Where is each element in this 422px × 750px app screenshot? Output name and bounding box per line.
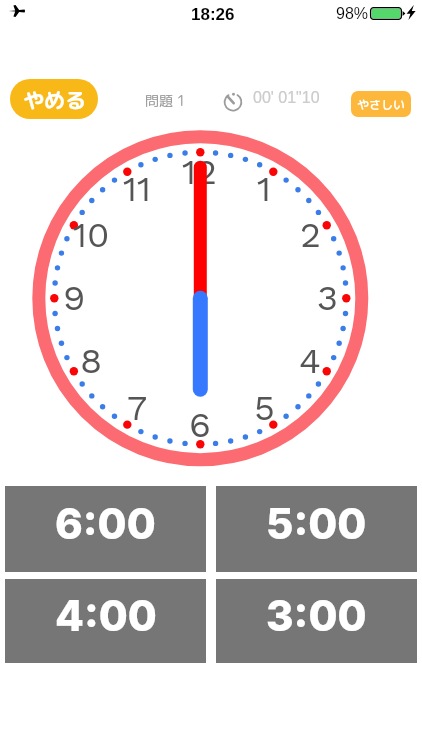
other: Battery 98 percent charging bbox=[370, 7, 406, 20]
staticText: 4 bbox=[299, 340, 321, 382]
staticText: 5:00 bbox=[266, 498, 367, 549]
staticText: 7 bbox=[127, 387, 148, 429]
staticText: 問題 1 bbox=[145, 91, 186, 111]
button[interactable]: 5:00 bbox=[216, 486, 417, 572]
other: Airplane mode bbox=[8, 4, 26, 18]
button[interactable]: やさしい bbox=[351, 91, 411, 117]
button[interactable]: 4:00 bbox=[5, 579, 206, 663]
staticText: 5 bbox=[254, 387, 275, 429]
staticText: 6:00 bbox=[55, 498, 156, 549]
staticText: 18:26 bbox=[191, 5, 235, 24]
staticText: 11 bbox=[123, 168, 152, 210]
staticText: 8 bbox=[80, 340, 103, 382]
staticText: 12 bbox=[182, 151, 218, 193]
button[interactable]: 3:00 bbox=[216, 579, 417, 663]
staticText: やさしい bbox=[357, 96, 406, 113]
button[interactable]: 6:00 bbox=[5, 486, 206, 572]
staticText: 3:00 bbox=[266, 590, 367, 641]
button[interactable]: やめる bbox=[10, 79, 98, 119]
staticText: 00' 01"10 bbox=[253, 89, 320, 107]
staticText: 9 bbox=[63, 277, 86, 319]
staticText: 1 bbox=[257, 168, 272, 210]
other: Timer bbox=[222, 89, 244, 111]
staticText: 6 bbox=[189, 404, 211, 446]
staticText: やめる bbox=[23, 85, 86, 114]
staticText: 98% bbox=[336, 5, 369, 23]
staticText: 3 bbox=[317, 277, 338, 319]
staticText: 10 bbox=[73, 214, 110, 256]
staticText: 4:00 bbox=[55, 590, 157, 641]
staticText: 2 bbox=[300, 214, 321, 256]
